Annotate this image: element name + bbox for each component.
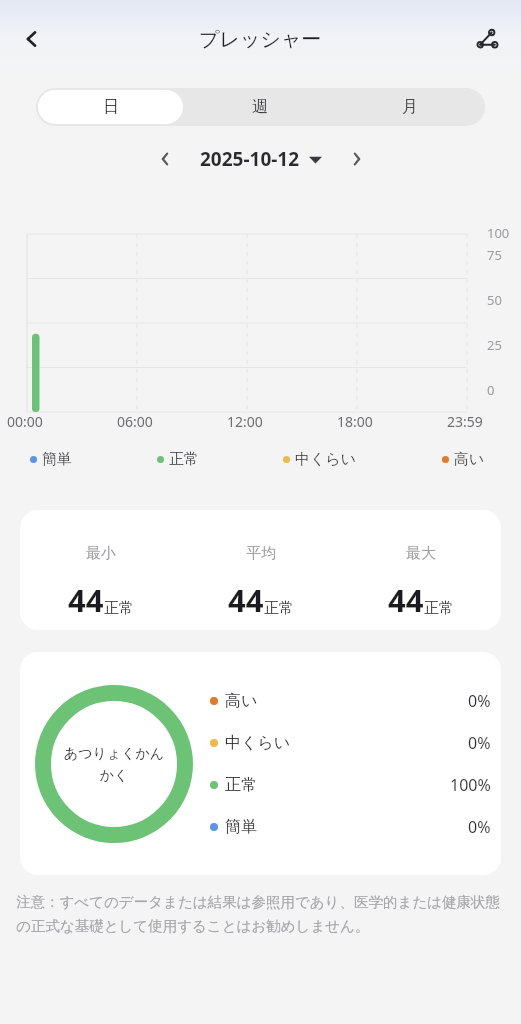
- staticText: 中くらい: [295, 450, 357, 469]
- staticText: 最小: [86, 544, 116, 563]
- staticText: 2025-10-12: [200, 146, 300, 172]
- staticText: 0%: [468, 690, 491, 712]
- button[interactable]: あつりょくかんかく: [20, 652, 501, 875]
- staticText: あつりょくかんかく: [63, 745, 165, 784]
- staticText: 簡単: [225, 817, 257, 837]
- staticText: 0: [487, 381, 495, 399]
- staticText: 正常: [104, 599, 134, 618]
- button[interactable]: 2025-10-12: [200, 146, 322, 172]
- staticText: 06:00: [117, 412, 153, 431]
- staticText: 100%: [450, 774, 491, 796]
- staticText: 44: [388, 579, 424, 621]
- staticText: 高い: [454, 450, 485, 469]
- staticText: 最大: [406, 544, 436, 563]
- button[interactable]: 最小: [20, 510, 501, 630]
- staticText: 月: [402, 97, 418, 117]
- staticText: 12:00: [227, 412, 263, 431]
- staticText: 簡単: [42, 450, 72, 469]
- staticText: 0%: [468, 816, 491, 838]
- staticText: 中くらい: [225, 733, 291, 753]
- staticText: 00:00: [7, 412, 43, 431]
- staticText: 44: [228, 579, 264, 621]
- staticText: プレッシャー: [199, 27, 322, 52]
- staticText: 44: [68, 579, 104, 621]
- staticText: 高い: [225, 691, 258, 711]
- button[interactable]: Next day: [340, 142, 374, 176]
- staticText: 100: [487, 224, 510, 242]
- staticText: 正常: [169, 450, 199, 469]
- staticText: 正常: [264, 599, 294, 618]
- button[interactable]: 日: [38, 90, 183, 124]
- staticText: 平均: [246, 544, 276, 563]
- staticText: 23:59: [447, 412, 483, 431]
- button[interactable]: Share: [463, 15, 511, 63]
- staticText: 正常: [225, 775, 257, 795]
- button[interactable]: 週: [187, 90, 333, 124]
- staticText: 50: [487, 291, 502, 309]
- staticText: 75: [487, 246, 502, 264]
- staticText: 注意：すべてのデータまたは結果は参照用であり、医学的または健康状態の正式な基礎と…: [16, 893, 505, 935]
- button[interactable]: Previous day: [148, 142, 182, 176]
- staticText: 0%: [468, 732, 491, 754]
- staticText: 日: [103, 97, 119, 117]
- staticText: 25: [487, 336, 502, 354]
- staticText: 18:00: [337, 412, 373, 431]
- staticText: 週: [252, 97, 268, 117]
- button[interactable]: Back: [8, 15, 56, 63]
- button[interactable]: 月: [337, 90, 483, 124]
- staticText: 正常: [424, 599, 454, 618]
